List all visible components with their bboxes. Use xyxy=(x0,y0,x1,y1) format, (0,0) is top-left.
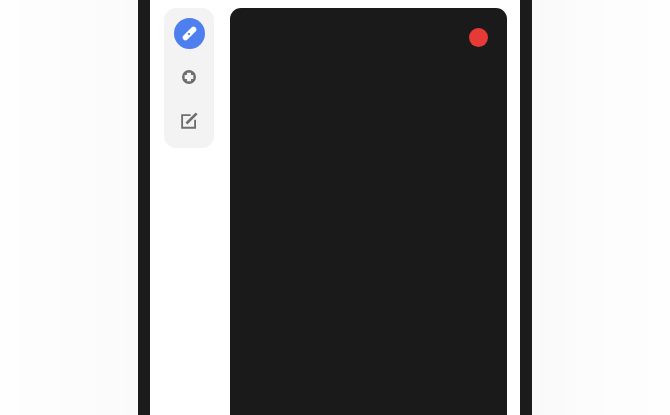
button[interactable]: Stop recording xyxy=(469,28,488,47)
button[interactable]: Pointer tool xyxy=(167,11,211,55)
button[interactable]: Edit xyxy=(167,99,211,143)
button[interactable]: D-pad xyxy=(167,55,211,99)
